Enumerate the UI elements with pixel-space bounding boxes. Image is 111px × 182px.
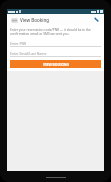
staticText: Enter your reservation code/PNR — it sho… [10,28,101,36]
button[interactable]: Enter PNR [10,40,101,47]
staticText: Enter Email/Last Name [10,51,47,56]
button[interactable]: Enter Email/Last Name [10,50,101,57]
staticText: View Booking [20,17,50,23]
button[interactable]: Call support [92,15,101,24]
staticText: VIEW BOOKING [43,62,69,67]
button[interactable]: Open navigation menu [10,16,18,24]
staticText: Enter PNR [10,41,27,46]
button[interactable]: VIEW BOOKING [10,60,101,68]
